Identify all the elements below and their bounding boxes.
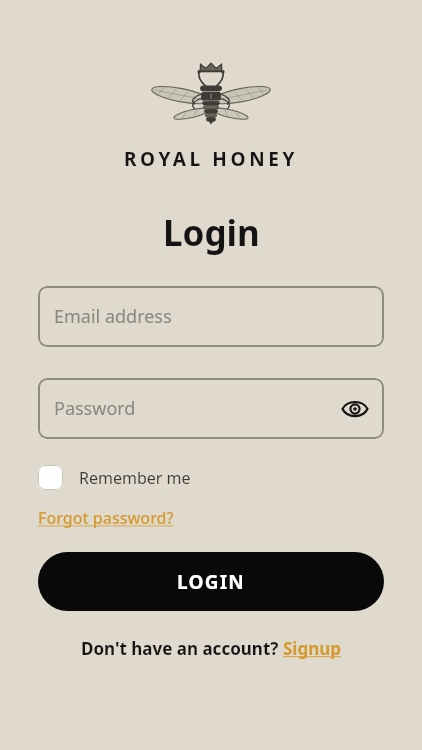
staticText: Forgot password?	[38, 507, 174, 529]
button[interactable]: Signup	[283, 637, 342, 660]
button[interactable]: LOGIN	[38, 552, 384, 611]
staticText: Password	[54, 396, 136, 421]
staticText: LOGIN	[177, 569, 245, 595]
staticText: Email address	[54, 304, 172, 329]
staticText: Remember me	[79, 467, 191, 489]
button[interactable]: Password	[38, 378, 384, 439]
staticText: Signup	[283, 637, 342, 660]
staticText: Login	[163, 209, 260, 257]
button[interactable]: Email address	[38, 286, 384, 347]
button[interactable]: Forgot password?	[38, 507, 174, 529]
button[interactable]: Remember me	[38, 465, 191, 490]
staticText: ROYAL HONEY	[124, 146, 298, 172]
staticText: Don't have an account?	[81, 637, 283, 660]
button[interactable]: Show password	[338, 392, 372, 426]
